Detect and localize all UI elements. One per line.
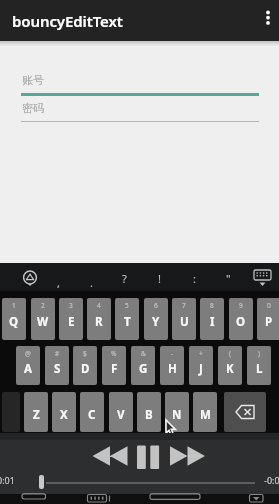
staticText: S [54, 361, 61, 377]
button[interactable]: , [49, 270, 67, 294]
button[interactable] [224, 392, 266, 432]
button[interactable] [90, 441, 132, 471]
staticText: ! [158, 271, 161, 286]
staticText: 密码 [22, 101, 44, 115]
button[interactable]: V [109, 392, 133, 432]
button[interactable] [249, 266, 276, 290]
button[interactable] [33, 481, 255, 495]
button[interactable]: 0 [257, 298, 279, 340]
staticText: X [60, 407, 68, 423]
staticText: U [180, 314, 189, 330]
button[interactable]: 9 [229, 298, 253, 340]
staticText: A [24, 361, 32, 377]
staticText: L [256, 361, 263, 377]
button[interactable]: & [131, 346, 155, 385]
staticText: ? [122, 271, 127, 286]
staticText: & [141, 349, 146, 358]
staticText: 0 [267, 301, 271, 310]
staticText: 0:01 [0, 474, 15, 486]
button[interactable]: 4 [87, 298, 111, 340]
staticText: T [124, 314, 131, 330]
staticText: % [111, 349, 117, 358]
button[interactable]: $ [73, 346, 97, 385]
staticText: 账号 [22, 73, 44, 87]
staticText: + [199, 349, 203, 358]
staticText: bouncyEditText [12, 11, 123, 31]
staticText: $ [83, 349, 87, 358]
staticText: K [226, 361, 234, 377]
staticText: ) [258, 349, 260, 358]
button[interactable]: - [160, 346, 184, 385]
button[interactable]: " [219, 266, 237, 290]
staticText: 4 [97, 301, 101, 310]
staticText: N [172, 407, 182, 423]
button[interactable]: 2 [31, 298, 55, 340]
staticText: @ [25, 349, 31, 358]
button[interactable]: B [137, 392, 161, 432]
button[interactable]: # [45, 346, 69, 385]
staticText: 8 [210, 301, 214, 310]
button[interactable]: M [193, 392, 217, 432]
staticText: I [210, 314, 215, 330]
staticText: " [226, 271, 231, 286]
staticText: Z [33, 407, 40, 423]
staticText: 9 [239, 301, 243, 310]
staticText: 2 [41, 301, 45, 310]
button[interactable]: % [102, 346, 126, 385]
button[interactable]: 6 [144, 298, 168, 340]
button[interactable]: X [52, 392, 76, 432]
staticText: : [193, 271, 196, 286]
button[interactable]: + [189, 346, 213, 385]
staticText: J [199, 361, 203, 377]
staticText: W [37, 314, 49, 330]
staticText: C [88, 407, 96, 423]
staticText: 5 [125, 301, 129, 310]
staticText: O [236, 314, 246, 330]
staticText: D [81, 361, 90, 377]
staticText: E [68, 314, 75, 330]
button[interactable] [167, 441, 209, 471]
staticText: # [55, 349, 60, 358]
button[interactable]: @ [16, 346, 40, 385]
button[interactable]: ? [115, 266, 133, 290]
staticText: M [200, 407, 211, 423]
button[interactable]: 账号 [21, 66, 259, 96]
staticText: H [168, 361, 177, 377]
button[interactable]: 8 [200, 298, 224, 340]
button[interactable]: 5 [115, 298, 139, 340]
staticText: 7 [182, 301, 186, 310]
button[interactable]: 1 [2, 298, 26, 340]
button[interactable]: . [82, 270, 100, 294]
staticText: 3 [69, 301, 73, 310]
staticText: G [139, 361, 148, 377]
staticText: Q [9, 314, 19, 330]
staticText: Y [152, 314, 160, 330]
staticText: V [117, 407, 125, 423]
staticText: 1 [12, 301, 16, 310]
button[interactable]: 3 [59, 298, 83, 340]
staticText: B [145, 407, 153, 423]
button[interactable]: C [80, 392, 104, 432]
staticText: 6 [154, 301, 158, 310]
button[interactable] [16, 264, 44, 290]
staticText: R [95, 314, 103, 330]
button[interactable]: ! [150, 266, 168, 290]
button[interactable]: : [185, 266, 203, 290]
button[interactable]: Z [24, 392, 48, 432]
button[interactable]: ) [247, 346, 271, 385]
staticText: F [111, 361, 118, 377]
button[interactable] [255, 0, 279, 41]
staticText: -0:07 [264, 474, 279, 486]
button[interactable]: 7 [172, 298, 196, 340]
staticText: , [57, 275, 60, 290]
staticText: . [90, 275, 93, 290]
button[interactable]: N [165, 392, 189, 432]
button[interactable] [133, 441, 163, 471]
staticText: ( [229, 349, 231, 358]
staticText: - [171, 349, 174, 358]
button[interactable]: 密码 [21, 96, 259, 121]
button[interactable]: ( [218, 346, 242, 385]
staticText: P [265, 314, 273, 330]
